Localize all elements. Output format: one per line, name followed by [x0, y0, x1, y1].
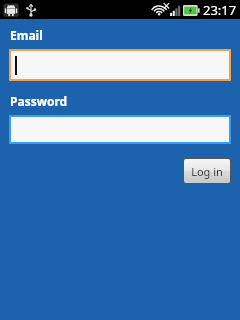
staticText: Password — [10, 93, 68, 109]
staticText: Log in — [191, 164, 223, 179]
button[interactable] — [11, 51, 229, 79]
staticText: Email — [10, 27, 43, 43]
button[interactable]: Log in — [184, 159, 230, 183]
staticText: 23:17 — [203, 1, 237, 19]
